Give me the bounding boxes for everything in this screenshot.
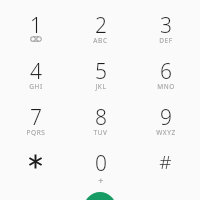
button[interactable]: 4 GHI bbox=[3, 57, 68, 103]
staticText: 0 bbox=[95, 149, 107, 174]
staticText: + bbox=[98, 174, 104, 183]
button[interactable]: star bbox=[3, 149, 68, 195]
button[interactable]: 9 WXYZ bbox=[133, 103, 198, 149]
staticText: 3 bbox=[160, 11, 172, 36]
staticText: 1 bbox=[30, 11, 42, 36]
staticText: 5 bbox=[95, 57, 107, 82]
staticText: JKL bbox=[95, 82, 107, 91]
staticText: 6 bbox=[160, 57, 172, 82]
staticText: 8 bbox=[95, 103, 107, 128]
button[interactable]: 2 ABC bbox=[68, 11, 133, 57]
button[interactable]: 1 voicemail bbox=[3, 11, 68, 57]
staticText: 2 bbox=[95, 11, 107, 36]
button[interactable]: 0 plus bbox=[68, 149, 133, 195]
staticText: TUV bbox=[93, 128, 108, 137]
staticText: GHI bbox=[29, 82, 43, 91]
staticText: MNO bbox=[157, 82, 175, 91]
staticText: DEF bbox=[159, 36, 173, 45]
button[interactable]: 5 JKL bbox=[68, 57, 133, 103]
button[interactable]: pound bbox=[133, 149, 198, 195]
staticText: 7 bbox=[30, 103, 42, 128]
button[interactable]: 6 MNO bbox=[133, 57, 198, 103]
button[interactable]: 3 DEF bbox=[133, 11, 198, 57]
button[interactable]: Call bbox=[84, 192, 116, 200]
staticText: PQRS bbox=[26, 128, 46, 137]
staticText: # bbox=[159, 149, 172, 174]
button[interactable]: 7 PQRS bbox=[3, 103, 68, 149]
button[interactable]: 8 TUV bbox=[68, 103, 133, 149]
staticText: ABC bbox=[93, 36, 108, 45]
staticText: 4 bbox=[30, 57, 42, 82]
staticText: 9 bbox=[160, 103, 172, 128]
staticText: WXYZ bbox=[156, 128, 176, 137]
